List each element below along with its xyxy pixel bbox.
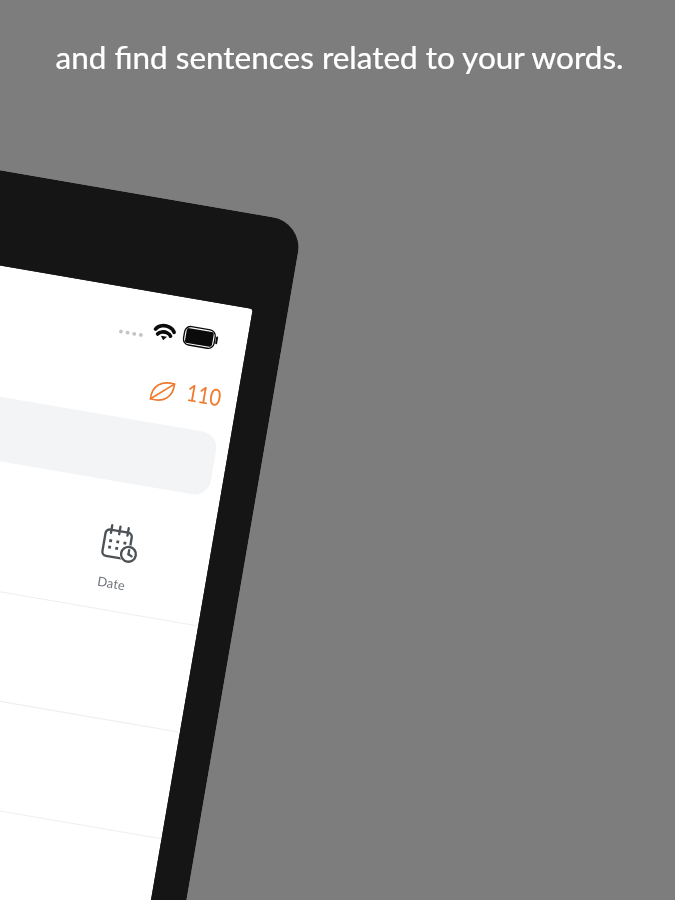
button[interactable]: Date [0, 468, 217, 625]
staticText: and find sentences related to your words… [2, 38, 675, 76]
button[interactable]: Date [60, 495, 177, 619]
button[interactable]: Search [0, 386, 219, 497]
staticText: 110 [184, 377, 224, 411]
button[interactable]: List item [0, 787, 162, 900]
staticText: Date [96, 573, 126, 593]
button[interactable]: List item [0, 574, 198, 732]
button[interactable]: List item [0, 681, 180, 838]
